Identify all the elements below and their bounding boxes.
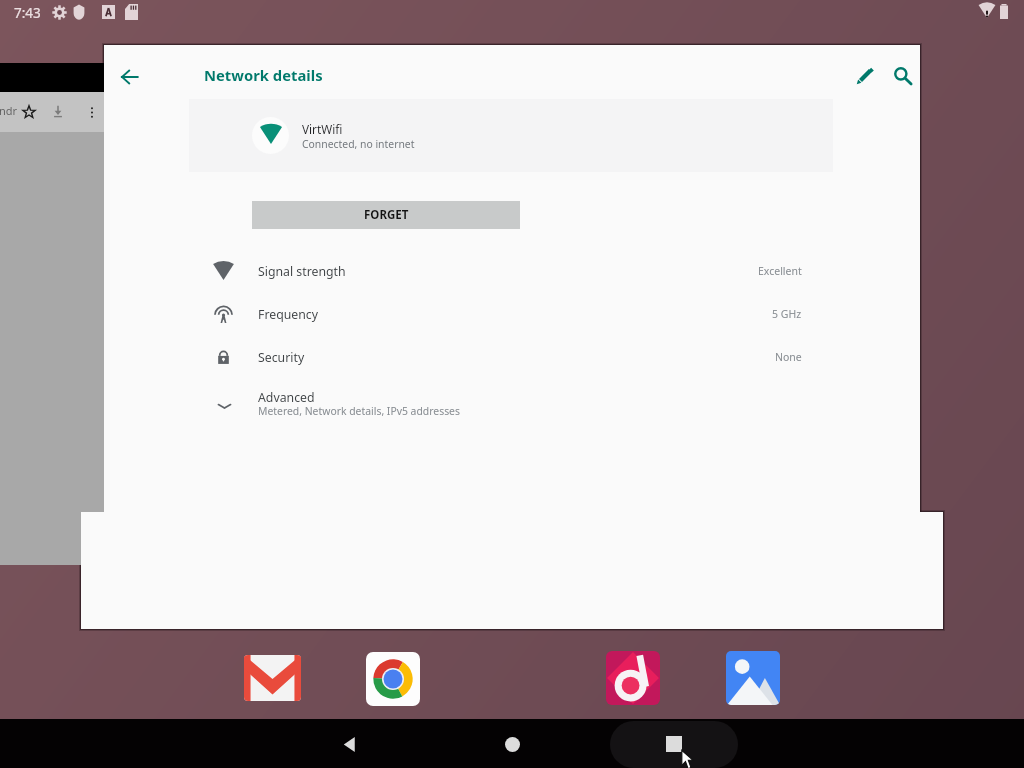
button[interactable]: Recent apps <box>658 722 690 766</box>
button[interactable]: FORGET <box>252 201 520 229</box>
button[interactable]: Photos <box>726 651 780 705</box>
button[interactable]: Advanced <box>188 384 920 432</box>
button[interactable]: Edit <box>847 58 883 94</box>
button[interactable]: Search <box>885 58 921 94</box>
button[interactable]: Gmail <box>244 655 301 701</box>
staticText: Signal strength <box>258 263 346 280</box>
button[interactable]: Signal strength <box>188 250 920 293</box>
staticText: ndr <box>0 103 18 118</box>
button[interactable]: Home <box>496 722 528 766</box>
staticText: Advanced <box>258 389 315 406</box>
staticText: Metered, Network details, IPv5 addresses <box>258 404 460 418</box>
staticText: Connected, no internet <box>302 137 415 151</box>
staticText: 5 GHz <box>772 307 802 321</box>
staticText: 7:43 <box>14 4 41 22</box>
button[interactable]: Back <box>333 722 365 766</box>
staticText: Excellent <box>758 264 802 278</box>
button[interactable]: Music <box>606 651 660 705</box>
button[interactable]: Security <box>188 336 920 379</box>
button[interactable]: VirtWifi <box>189 99 833 172</box>
staticText: None <box>775 350 802 364</box>
button[interactable]: Back <box>111 59 147 95</box>
button[interactable]: Chrome <box>366 652 420 706</box>
button[interactable]: Recents <box>610 721 738 768</box>
staticText: Security <box>258 349 305 366</box>
staticText: Network details <box>204 65 323 85</box>
button[interactable]: Frequency <box>188 293 920 336</box>
staticText: FORGET <box>364 207 409 223</box>
staticText: Frequency <box>258 306 319 323</box>
staticText: VirtWifi <box>302 121 343 137</box>
